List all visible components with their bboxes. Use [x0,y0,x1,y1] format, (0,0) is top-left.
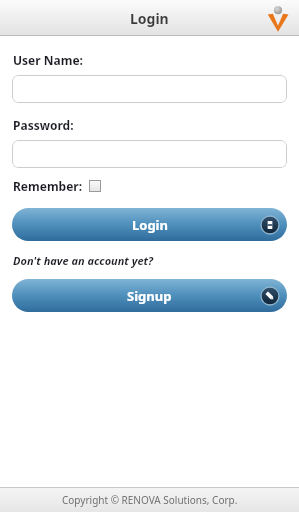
button[interactable]: Logo [263,3,293,33]
staticText: User Name: [13,52,83,68]
staticText: Signup [127,287,172,305]
staticText: Remember: [13,178,83,194]
button[interactable]: Signup [12,279,287,312]
button[interactable]: Login [12,208,287,241]
staticText: Password: [13,117,74,133]
staticText: Copyright © RENOVA Solutions, Corp. [62,493,238,507]
staticText: Don't have an account yet? [13,253,154,268]
staticText: Login [132,216,168,234]
other: Signup [261,287,279,305]
button[interactable] [12,140,287,168]
staticText: Login [130,9,169,28]
other: Login [261,216,279,234]
button[interactable] [12,75,287,103]
button[interactable]: Remember: [13,178,101,194]
